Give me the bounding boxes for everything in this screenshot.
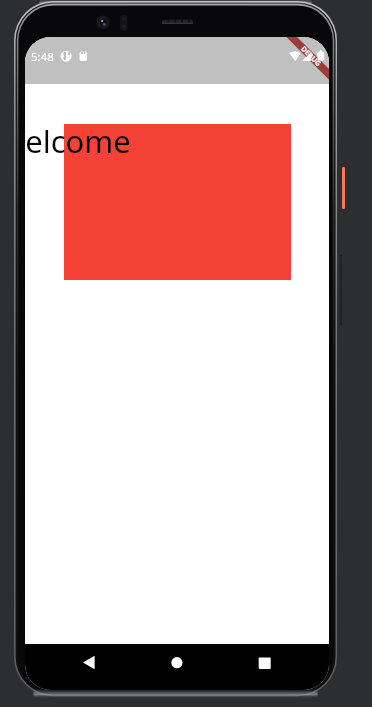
staticText: DEBUG (299, 44, 324, 68)
button[interactable]: Home (161, 644, 193, 681)
staticText: 5:48 (31, 49, 54, 65)
staticText: Welcome (25, 120, 131, 162)
button[interactable]: Back (73, 644, 105, 681)
button[interactable]: Red placeholder panel (64, 124, 291, 280)
button[interactable]: Power button (342, 167, 345, 209)
button[interactable]: Recent apps (249, 644, 281, 681)
button[interactable]: Status bar (25, 37, 329, 84)
